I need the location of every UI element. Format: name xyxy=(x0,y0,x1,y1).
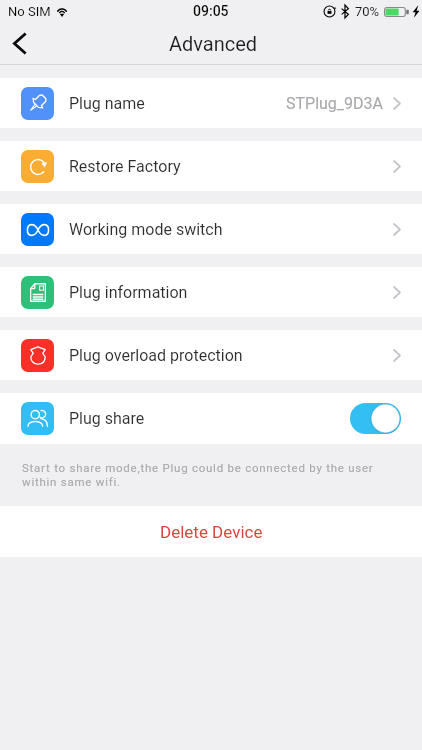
staticText: 70% xyxy=(355,4,380,19)
button[interactable]: Restore Factory xyxy=(0,141,422,191)
staticText: Delete Device xyxy=(160,522,263,542)
button[interactable]: Delete Device xyxy=(0,506,422,557)
staticText: Advanced xyxy=(169,32,258,55)
staticText: Working mode switch xyxy=(69,220,223,239)
staticText: Start to share mode,the Plug could be co… xyxy=(22,461,390,489)
button[interactable]: Plug name xyxy=(0,78,422,128)
button[interactable]: Working mode switch xyxy=(0,204,422,254)
button[interactable]: Plug overload protection xyxy=(0,330,422,380)
button[interactable]: Plug information xyxy=(0,267,422,317)
staticText: Plug name xyxy=(69,94,145,113)
staticText: Restore Factory xyxy=(69,157,181,176)
button[interactable]: Plug share toggle, on xyxy=(350,403,401,434)
staticText: Plug overload protection xyxy=(69,346,243,365)
staticText: STPlug_9D3A xyxy=(286,94,383,113)
staticText: 09:05 xyxy=(193,3,229,19)
button[interactable]: Back xyxy=(0,22,40,65)
staticText: No SIM xyxy=(8,4,51,19)
staticText: Plug share xyxy=(69,409,145,428)
staticText: Plug information xyxy=(69,283,188,302)
